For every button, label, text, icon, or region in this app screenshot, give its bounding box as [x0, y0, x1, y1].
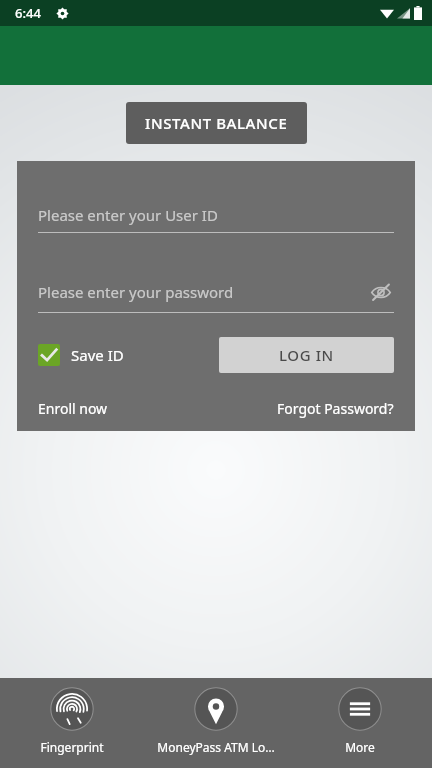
button[interactable]: INSTANT BALANCE	[126, 102, 307, 144]
staticText: Fingerprint	[40, 739, 104, 755]
button[interactable]: More	[288, 686, 432, 768]
staticText: Save ID	[71, 345, 124, 365]
button[interactable]: Save ID	[38, 344, 124, 366]
staticText: More	[345, 739, 375, 755]
staticText: Enroll now	[38, 399, 108, 418]
staticText: Please enter your User ID	[38, 205, 394, 225]
button[interactable]: Show password	[368, 279, 394, 305]
staticText: 6:44	[15, 4, 41, 22]
staticText: MoneyPass ATM Lo…	[157, 739, 275, 755]
button[interactable]: MoneyPass ATM Lo…	[144, 686, 288, 768]
button[interactable]: LOG IN	[219, 337, 394, 373]
button[interactable]: Enroll now	[38, 399, 108, 418]
staticText: Please enter your password	[38, 282, 368, 302]
button[interactable]: Please enter your password	[38, 279, 394, 313]
staticText: INSTANT BALANCE	[145, 113, 288, 133]
staticText: Forgot Password?	[277, 399, 394, 418]
button[interactable]: Fingerprint	[0, 686, 144, 768]
staticText: LOG IN	[279, 345, 334, 365]
button[interactable]: Forgot Password?	[277, 399, 394, 418]
button[interactable]: Please enter your User ID	[38, 205, 394, 233]
